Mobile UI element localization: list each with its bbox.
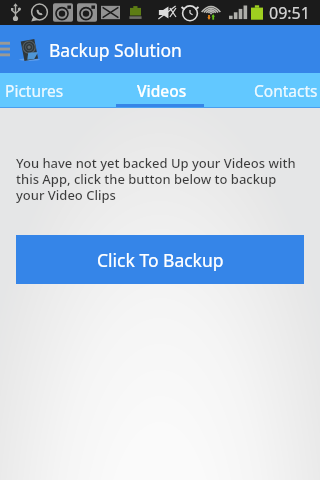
button[interactable]: Open navigation menu (0, 25, 14, 73)
staticText: 09:51 (269, 2, 310, 24)
staticText: Videos (137, 80, 187, 101)
button[interactable]: Click To Backup (16, 235, 304, 284)
staticText: Pictures (5, 80, 64, 101)
staticText: Click To Backup (97, 248, 224, 272)
staticText: Contacts (254, 80, 318, 101)
button[interactable]: Videos (112, 73, 208, 108)
button[interactable]: Contacts (250, 73, 320, 108)
button[interactable]: Pictures (0, 73, 64, 108)
staticText: You have not yet backed Up your Videos w… (16, 154, 306, 203)
staticText: Backup Solution (49, 38, 182, 62)
